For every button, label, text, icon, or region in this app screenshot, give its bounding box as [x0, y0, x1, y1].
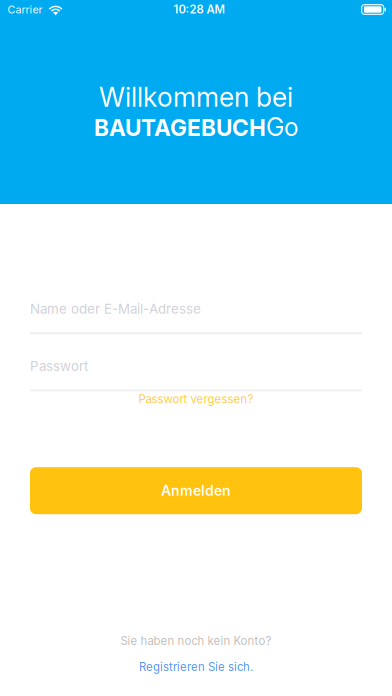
button[interactable]: Passwort vergessen? [30, 391, 362, 407]
button[interactable]: Anmelden [30, 467, 362, 514]
button[interactable]: Passwort [30, 359, 362, 391]
staticText: 10:28 AM [173, 3, 224, 16]
staticText: BAUTAGEBUCH [94, 114, 266, 141]
staticText: Sie haben noch kein Konto? [120, 634, 271, 648]
staticText: Go [266, 112, 298, 142]
staticText: Passwort vergessen? [138, 392, 253, 406]
staticText: Passwort [30, 358, 88, 374]
staticText: Carrier [7, 3, 42, 16]
staticText: Anmelden [161, 482, 231, 499]
staticText: Willkommen bei [99, 81, 293, 113]
button[interactable]: Registrieren Sie sich. [30, 660, 362, 674]
button[interactable]: Name oder E-Mail-Adresse [30, 301, 362, 334]
staticText: Name oder E-Mail-Adresse [30, 301, 201, 317]
staticText: Registrieren Sie sich. [139, 660, 253, 674]
